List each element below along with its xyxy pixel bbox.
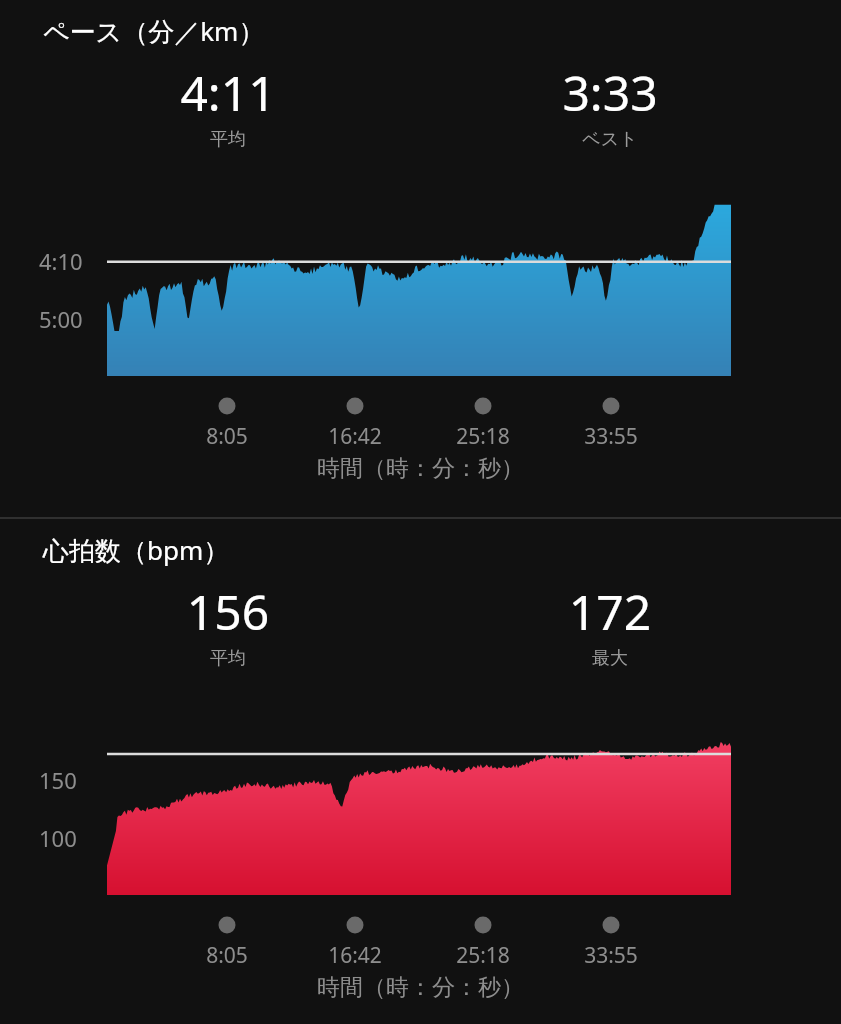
staticText: 3:33	[500, 60, 720, 125]
staticText: 平均	[118, 647, 338, 670]
staticText: 時間（時：分：秒）	[0, 454, 841, 483]
staticText: ペース（分／km）	[43, 13, 265, 49]
staticText: 最大	[500, 647, 720, 670]
staticText: 5:00	[39, 304, 83, 334]
staticText: 33:55	[551, 422, 671, 451]
staticText: 16:42	[295, 422, 415, 451]
staticText: 8:05	[167, 422, 287, 451]
staticText: 4:11	[118, 60, 338, 125]
staticText: ベスト	[500, 128, 720, 151]
staticText: 8:05	[167, 941, 287, 970]
button[interactable]: 心拍数（bpm）	[0, 519, 841, 1024]
staticText: 平均	[118, 128, 338, 151]
staticText: 33:55	[551, 941, 671, 970]
staticText: 100	[39, 823, 77, 853]
staticText: 25:18	[423, 422, 543, 451]
staticText: 4:10	[39, 246, 83, 276]
staticText: 心拍数（bpm）	[43, 532, 230, 568]
staticText: 16:42	[295, 941, 415, 970]
staticText: 150	[39, 765, 77, 795]
staticText: 156	[118, 579, 338, 644]
staticText: 172	[500, 579, 720, 644]
staticText: 25:18	[423, 941, 543, 970]
staticText: 時間（時：分：秒）	[0, 973, 841, 1002]
button[interactable]: ペース（分／km）	[0, 0, 841, 517]
